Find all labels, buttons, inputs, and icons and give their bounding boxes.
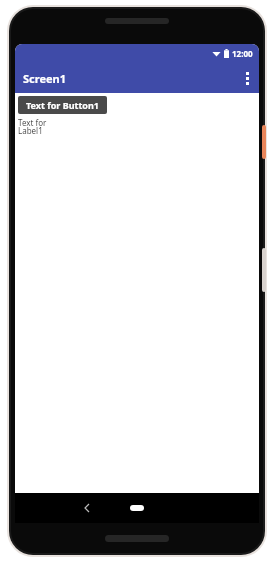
button[interactable]: More options — [235, 63, 259, 93]
button[interactable]: Back — [73, 493, 101, 523]
staticText: Text for Label1 — [18, 117, 47, 136]
staticText: Text for Button1 — [26, 99, 99, 111]
button[interactable]: Home — [119, 497, 155, 519]
staticText: 12:00 — [232, 48, 253, 59]
staticText: Screen1 — [23, 71, 67, 86]
button[interactable]: Text for Button1 — [18, 96, 107, 114]
